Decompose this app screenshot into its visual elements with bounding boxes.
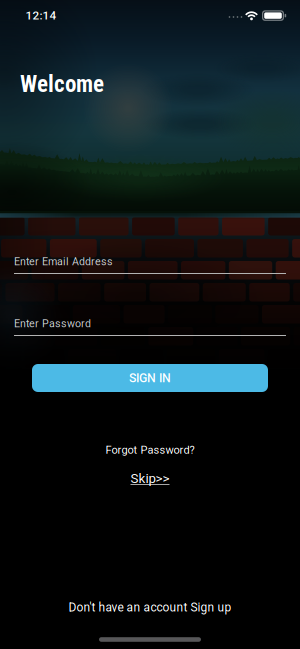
- button[interactable]: SIGN IN: [32, 364, 268, 392]
- staticText: Forgot Password?: [105, 443, 194, 456]
- button[interactable]: Enter Password: [14, 314, 286, 338]
- staticText: SIGN IN: [129, 371, 171, 385]
- staticText: Don't have an account Sign up: [68, 600, 231, 615]
- staticText: Enter Password: [14, 317, 91, 330]
- button[interactable]: Forgot Password?: [105, 443, 194, 456]
- button[interactable]: Don't have an account Sign up: [68, 600, 231, 615]
- staticText: Skip>>: [130, 471, 169, 486]
- staticText: Welcome: [20, 70, 104, 97]
- staticText: Enter Email Address: [14, 255, 113, 268]
- button[interactable]: Skip>>: [130, 471, 169, 486]
- staticText: 12:14: [25, 9, 56, 22]
- button[interactable]: Enter Email Address: [14, 252, 286, 276]
